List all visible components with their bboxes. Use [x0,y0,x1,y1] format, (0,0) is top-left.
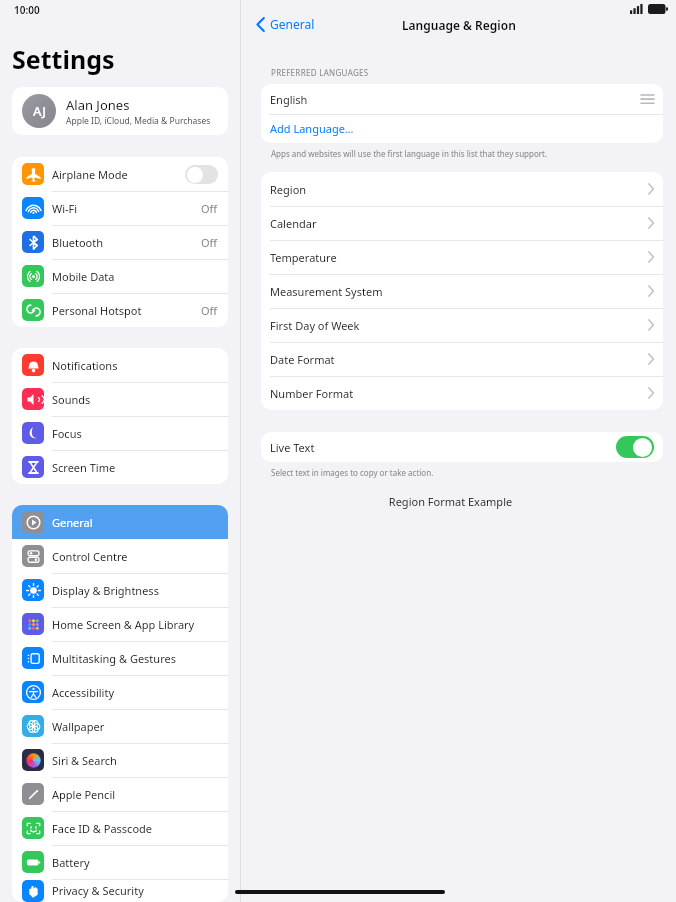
staticText: Live Text [270,440,315,455]
button[interactable]: Siri & Search [12,743,228,777]
button[interactable]: Control Centre [12,539,228,573]
staticText: Number Format [270,386,354,401]
staticText: Language & Region [402,17,516,33]
button[interactable]: Live Text toggle [616,436,654,458]
staticText: AJ [33,102,46,120]
staticText: Multitasking & Gestures [52,651,176,666]
staticText: Region [270,182,307,197]
button[interactable]: General [12,505,228,539]
button[interactable]: Wi-Fi [12,191,228,225]
button[interactable]: Wallpaper [12,709,228,743]
button[interactable]: Mobile Data [12,259,228,293]
staticText: General [52,515,93,530]
button[interactable]: Privacy & Security [12,879,228,902]
button[interactable]: First Day of Week [261,308,663,342]
button[interactable]: Battery [12,845,228,879]
staticText: Mobile Data [52,269,115,284]
staticText: Region Format Example [233,494,668,509]
button[interactable]: Accessibility [12,675,228,709]
staticText: PREFERRED LANGUAGES [271,67,369,78]
button[interactable]: Date Format [261,342,663,376]
staticText: Off [201,201,218,216]
button[interactable]: Number Format [261,376,663,410]
button[interactable]: General [255,13,317,35]
staticText: Add Language… [270,121,354,136]
button[interactable]: Sounds [12,382,228,416]
staticText: Sounds [52,392,91,407]
staticText: Siri & Search [52,753,117,768]
staticText: Battery [52,855,90,870]
staticText: Personal Hotspot [52,303,142,318]
button[interactable]: Screen Time [12,450,228,484]
staticText: Off [201,303,218,318]
staticText: Apple Pencil [52,787,116,802]
button[interactable]: Live Text [261,432,663,462]
button[interactable]: Focus [12,416,228,450]
button[interactable]: AJ [12,87,228,135]
staticText: Measurement System [270,284,383,299]
staticText: Apple ID, iCloud, Media & Purchases [66,115,211,127]
button[interactable]: Personal Hotspot [12,293,228,327]
staticText: Date Format [270,352,335,367]
button[interactable]: Apple Pencil [12,777,228,811]
button[interactable]: Airplane Mode [12,157,228,191]
staticText: Bluetooth [52,235,104,250]
button[interactable]: Add Language… [261,114,663,143]
button[interactable]: Calendar [261,206,663,240]
button[interactable]: Notifications [12,348,228,382]
staticText: Airplane Mode [52,167,128,182]
other: Reorder [641,95,654,104]
staticText: Face ID & Passcode [52,821,153,836]
staticText: Accessibility [52,685,115,700]
staticText: Wi-Fi [52,201,78,216]
staticText: Apps and websites will use the first lan… [271,148,548,159]
staticText: Control Centre [52,549,128,564]
staticText: Notifications [52,358,118,373]
staticText: Home Screen & App Library [52,617,195,632]
staticText: English [270,92,308,107]
button[interactable]: English [261,84,663,114]
staticText: 10:00 [14,3,40,17]
button[interactable]: Region [261,172,663,206]
staticText: Privacy & Security [52,883,144,898]
staticText: Focus [52,426,82,441]
staticText: Select text in images to copy or take ac… [271,467,434,478]
staticText: Off [201,235,218,250]
button[interactable]: Face ID & Passcode [12,811,228,845]
staticText: Wallpaper [52,719,105,734]
staticText: Temperature [270,250,337,265]
button[interactable]: Measurement System [261,274,663,308]
staticText: Display & Brightness [52,583,159,598]
staticText: General [270,16,315,32]
button[interactable]: Airplane Mode toggle [185,165,218,184]
button[interactable]: Bluetooth [12,225,228,259]
button[interactable]: Temperature [261,240,663,274]
button[interactable]: Multitasking & Gestures [12,641,228,675]
button[interactable]: Display & Brightness [12,573,228,607]
staticText: Calendar [270,216,317,231]
staticText: Screen Time [52,460,116,475]
staticText: Settings [12,42,115,76]
staticText: First Day of Week [270,318,360,333]
button[interactable]: Home Screen & App Library [12,607,228,641]
staticText: Alan Jones [66,96,130,114]
